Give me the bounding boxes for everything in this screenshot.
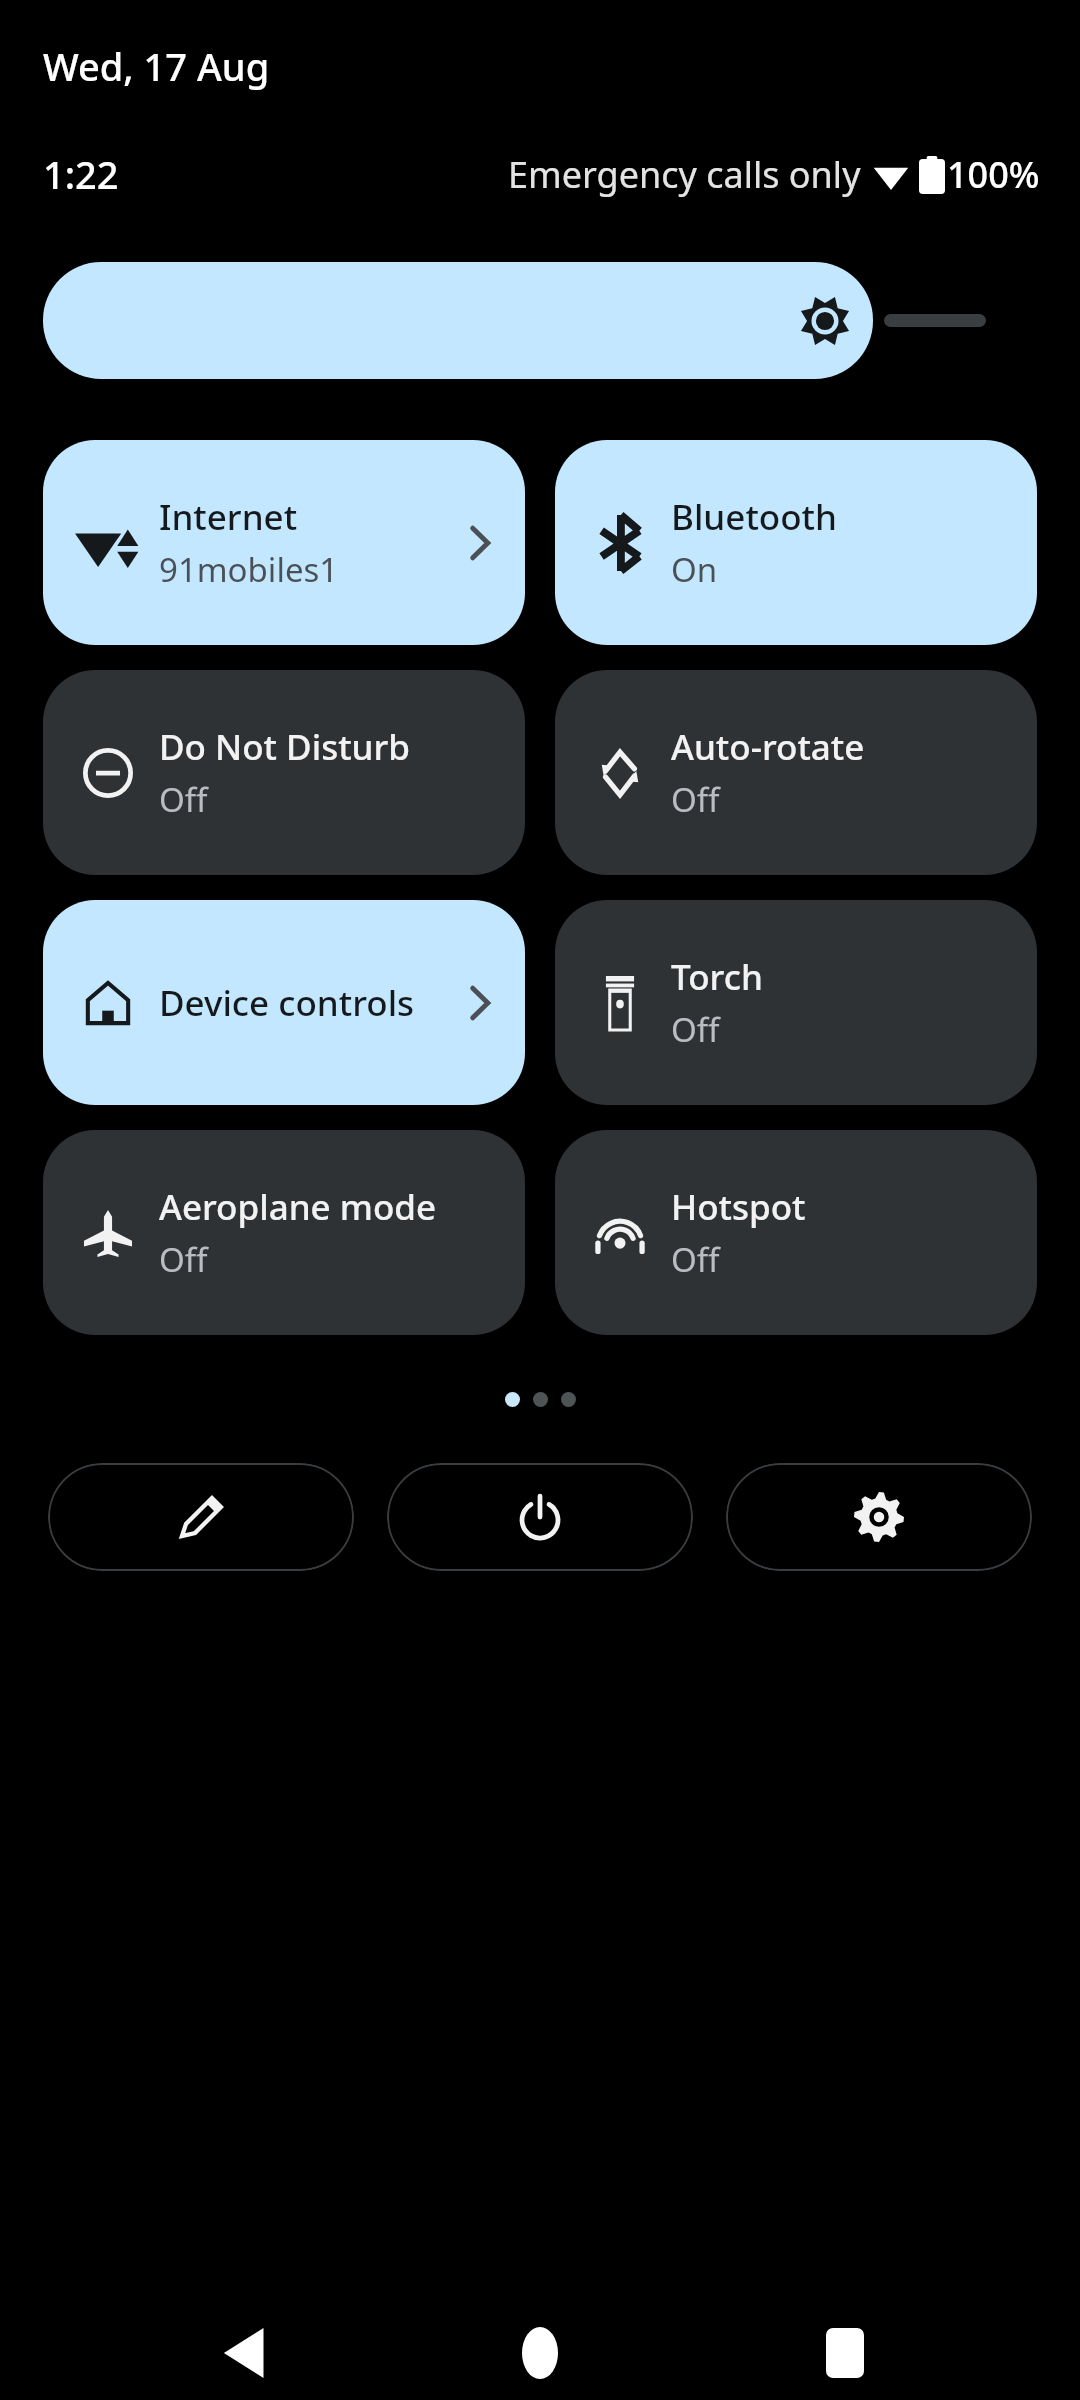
staticText: Torch: [671, 953, 763, 1001]
button[interactable]: Aeroplane mode: [43, 1130, 525, 1335]
button[interactable]: Auto-rotate: [555, 670, 1037, 875]
staticText: Off: [671, 1237, 720, 1282]
staticText: On: [671, 547, 718, 592]
staticText: Emergency calls only: [508, 150, 861, 199]
staticText: Bluetooth: [671, 493, 837, 541]
staticText: Aeroplane mode: [159, 1183, 437, 1231]
staticText: Hotspot: [671, 1183, 806, 1231]
button[interactable]: Edit tiles: [48, 1463, 354, 1571]
button[interactable]: Do Not Disturb: [43, 670, 525, 875]
button[interactable]: Power: [387, 1463, 693, 1571]
staticText: Auto-rotate: [671, 723, 865, 771]
button[interactable]: Bluetooth: [555, 440, 1037, 645]
staticText: Off: [159, 1237, 208, 1282]
button[interactable]: Back: [190, 2308, 300, 2398]
button[interactable]: Home: [485, 2308, 595, 2398]
staticText: 91mobiles1: [159, 547, 339, 592]
button[interactable]: Hotspot: [555, 1130, 1037, 1335]
staticText: Off: [671, 1007, 720, 1052]
staticText: 100%: [947, 150, 1040, 199]
staticText: Internet: [159, 493, 298, 541]
staticText: 1:22: [43, 148, 119, 200]
button[interactable]: Internet: [43, 440, 525, 645]
staticText: Off: [671, 777, 720, 822]
button[interactable]: Torch: [555, 900, 1037, 1105]
staticText: Off: [159, 777, 208, 822]
button[interactable]: Device controls: [43, 900, 525, 1105]
button[interactable]: Brightness: [43, 262, 873, 379]
button[interactable]: Recents: [790, 2308, 900, 2398]
staticText: Do Not Disturb: [159, 723, 411, 771]
staticText: Device controls: [159, 979, 467, 1027]
staticText: Wed, 17 Aug: [43, 40, 270, 92]
button[interactable]: Settings: [726, 1463, 1032, 1571]
